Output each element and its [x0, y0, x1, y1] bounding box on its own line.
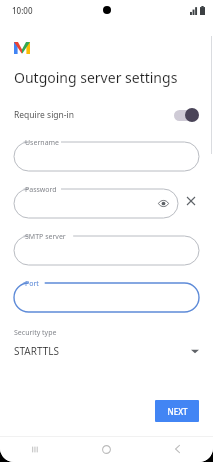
staticText: Require sign-in [14, 109, 75, 121]
other: Require sign-in toggle [173, 108, 199, 122]
button[interactable]: Recent apps [0, 436, 71, 462]
staticText: Username [25, 138, 60, 148]
button[interactable]: SMTP server [14, 231, 199, 265]
staticText: Security type [14, 328, 57, 338]
button[interactable]: Username [14, 137, 199, 171]
staticText: NEXT [167, 406, 188, 417]
staticText: Port [25, 279, 39, 289]
button[interactable]: Clear password [183, 193, 199, 209]
button[interactable]: Port [14, 278, 199, 312]
staticText: SMTP server [25, 232, 66, 242]
staticText: 10:00 [12, 5, 33, 16]
staticText: STARTTLS [14, 344, 60, 358]
button[interactable]: Require sign-in [14, 103, 199, 127]
staticText: Outgoing server settings [14, 68, 178, 87]
button[interactable]: Home [71, 436, 142, 462]
button[interactable]: Password [14, 184, 178, 218]
button[interactable]: Back [142, 436, 213, 462]
button[interactable]: NEXT [155, 400, 199, 422]
staticText: Password [25, 185, 57, 195]
other: Open security type dropdown [191, 349, 199, 354]
button[interactable]: Security type [14, 328, 199, 358]
button[interactable]: Show password [157, 197, 170, 210]
